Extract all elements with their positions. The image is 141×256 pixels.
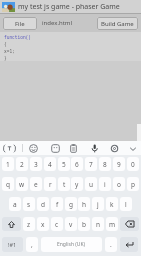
staticText: 1	[6, 160, 10, 169]
staticText: 7	[89, 160, 93, 169]
staticText: q	[6, 180, 10, 189]
button[interactable]: i	[99, 177, 111, 191]
staticText: x=1;	[4, 48, 15, 55]
staticText: ,	[31, 240, 33, 249]
button[interactable]: w	[16, 177, 28, 191]
staticText: English (UK)	[57, 241, 86, 248]
button[interactable]: 3	[30, 157, 42, 171]
button[interactable]: f	[51, 197, 63, 211]
button[interactable]: g	[65, 197, 77, 211]
button[interactable]: ,	[26, 237, 38, 252]
button[interactable]	[2, 217, 21, 231]
button[interactable]: h	[78, 197, 90, 211]
staticText: File	[15, 20, 25, 28]
staticText: 9	[117, 160, 121, 169]
button[interactable]: 1	[2, 157, 14, 171]
staticText: m	[109, 220, 116, 229]
staticText: {	[4, 41, 7, 48]
button[interactable]	[120, 237, 138, 252]
staticText: index.html	[42, 19, 73, 27]
staticText: k	[110, 200, 114, 209]
button[interactable]: a	[9, 197, 21, 211]
button[interactable]: File	[3, 17, 37, 30]
button[interactable]: 2	[16, 157, 28, 171]
button[interactable]: m	[106, 217, 118, 231]
button[interactable]: .	[105, 237, 117, 252]
button[interactable]: o	[113, 177, 125, 191]
staticText: z	[27, 220, 31, 229]
staticText: i	[104, 180, 106, 189]
button[interactable]	[109, 143, 120, 154]
button[interactable]: x	[37, 217, 49, 231]
button[interactable]: p	[127, 177, 139, 191]
button[interactable]: u	[85, 177, 97, 191]
button[interactable]: Build Game	[97, 17, 138, 30]
staticText: 2	[20, 160, 24, 169]
staticText: l	[125, 200, 127, 209]
staticText: function()	[4, 34, 31, 41]
staticText: y	[75, 180, 79, 189]
button[interactable]: 5	[58, 157, 70, 171]
button[interactable]	[50, 143, 61, 154]
button[interactable]	[127, 143, 138, 154]
staticText: f	[56, 200, 59, 209]
staticText: 4	[48, 160, 52, 169]
button[interactable]: b	[78, 217, 90, 231]
staticText: h	[82, 200, 87, 209]
button[interactable]	[4, 143, 15, 154]
button[interactable]: y	[71, 177, 83, 191]
staticText: o	[117, 180, 121, 189]
button[interactable]: e	[30, 177, 42, 191]
staticText: c	[55, 220, 59, 229]
staticText: j	[97, 200, 99, 209]
staticText: e	[34, 180, 38, 189]
staticText: r	[49, 180, 52, 189]
button[interactable]: l	[120, 197, 132, 211]
staticText: 0	[131, 160, 135, 169]
staticText: g	[69, 200, 73, 209]
staticText: }	[4, 55, 7, 61]
button[interactable]: 9	[113, 157, 125, 171]
button[interactable]: t	[58, 177, 70, 191]
button[interactable]: r	[44, 177, 56, 191]
staticText: !#1	[8, 241, 17, 248]
button[interactable]	[89, 143, 100, 154]
staticText: v	[69, 220, 73, 229]
staticText: 5	[62, 160, 66, 169]
staticText: t	[63, 180, 66, 189]
button[interactable]: !#1	[2, 237, 23, 252]
button[interactable]: z	[23, 217, 35, 231]
staticText: 6	[75, 160, 79, 169]
staticText: s	[27, 200, 31, 209]
button[interactable]: s	[23, 197, 35, 211]
staticText: u	[89, 180, 94, 189]
staticText: Build Game	[101, 20, 134, 28]
button[interactable]: 7	[85, 157, 97, 171]
staticText: p	[131, 180, 135, 189]
staticText: a	[13, 200, 17, 209]
button[interactable]: c	[51, 217, 63, 231]
button[interactable]	[68, 143, 79, 154]
staticText: x	[41, 220, 45, 229]
staticText: 3	[34, 160, 38, 169]
button[interactable]: j	[92, 197, 104, 211]
button[interactable]: v	[65, 217, 77, 231]
button[interactable]: English (UK)	[41, 237, 102, 252]
button[interactable]: k	[106, 197, 118, 211]
button[interactable]: 0	[127, 157, 139, 171]
button[interactable]	[28, 143, 39, 154]
button[interactable]: q	[2, 177, 14, 191]
staticText: w	[19, 180, 25, 189]
button[interactable]	[120, 217, 139, 231]
staticText: n	[96, 220, 101, 229]
button[interactable]: 4	[44, 157, 56, 171]
button[interactable]: n	[92, 217, 104, 231]
staticText: .	[110, 240, 112, 249]
staticText: my test js game - phaser Game	[18, 2, 120, 12]
button[interactable]: 8	[99, 157, 111, 171]
staticText: b	[82, 220, 86, 229]
button[interactable]: 6	[71, 157, 83, 171]
staticText: d	[41, 200, 45, 209]
staticText: 8	[103, 160, 107, 169]
button[interactable]: d	[37, 197, 49, 211]
